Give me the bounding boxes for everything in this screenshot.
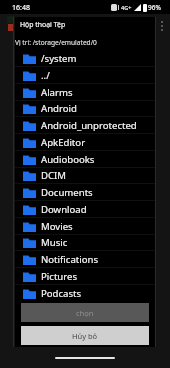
button[interactable]: ../ (15, 67, 155, 84)
button[interactable]: ApkEditor (15, 134, 155, 151)
button[interactable]: Android_unprotected (15, 117, 155, 134)
staticText: Android_unprotected (41, 119, 137, 132)
button[interactable]: Movies (15, 218, 155, 235)
button[interactable]: Music (15, 234, 155, 251)
staticText: chọn (76, 308, 94, 318)
staticText: ApkEditor (41, 136, 86, 149)
staticText: Music (41, 236, 68, 249)
staticText: Notifications (41, 253, 99, 266)
staticText: Hủy bỏ (72, 331, 98, 341)
staticText: Movies (41, 220, 73, 233)
staticText: ../ (41, 69, 50, 82)
staticText: Pictures (41, 270, 78, 283)
button[interactable]: More options (158, 20, 165, 32)
staticText: Alarms (41, 86, 73, 99)
staticText: Podcasts (41, 287, 82, 300)
button[interactable]: Documents (15, 184, 155, 201)
staticText: DCIM (41, 169, 67, 182)
button[interactable]: Audiobooks (15, 151, 155, 168)
button[interactable]: Android (15, 100, 155, 117)
staticText: Audiobooks (41, 153, 95, 166)
button[interactable]: Alarms (15, 84, 155, 101)
button[interactable]: DCIM (15, 167, 155, 184)
button[interactable]: Download (15, 201, 155, 218)
staticText: Android (41, 102, 77, 115)
staticText: Download (41, 203, 87, 216)
staticText: 96% (148, 3, 161, 12)
button[interactable]: Hủy bỏ (21, 326, 149, 345)
staticText: /system (41, 52, 77, 65)
button[interactable]: Pictures (15, 268, 155, 285)
button[interactable]: /system (15, 50, 155, 67)
staticText: Vị trí: /storage/emulated/0 (15, 38, 97, 47)
button[interactable]: chọn (21, 303, 149, 322)
staticText: 16:48 (12, 3, 30, 13)
staticText: Hộp thoại Tệp (20, 20, 66, 29)
button[interactable]: Podcasts (15, 285, 155, 301)
staticText: Documents (41, 186, 93, 199)
button[interactable]: Notifications (15, 251, 155, 268)
staticText: 4G+ (121, 4, 132, 11)
